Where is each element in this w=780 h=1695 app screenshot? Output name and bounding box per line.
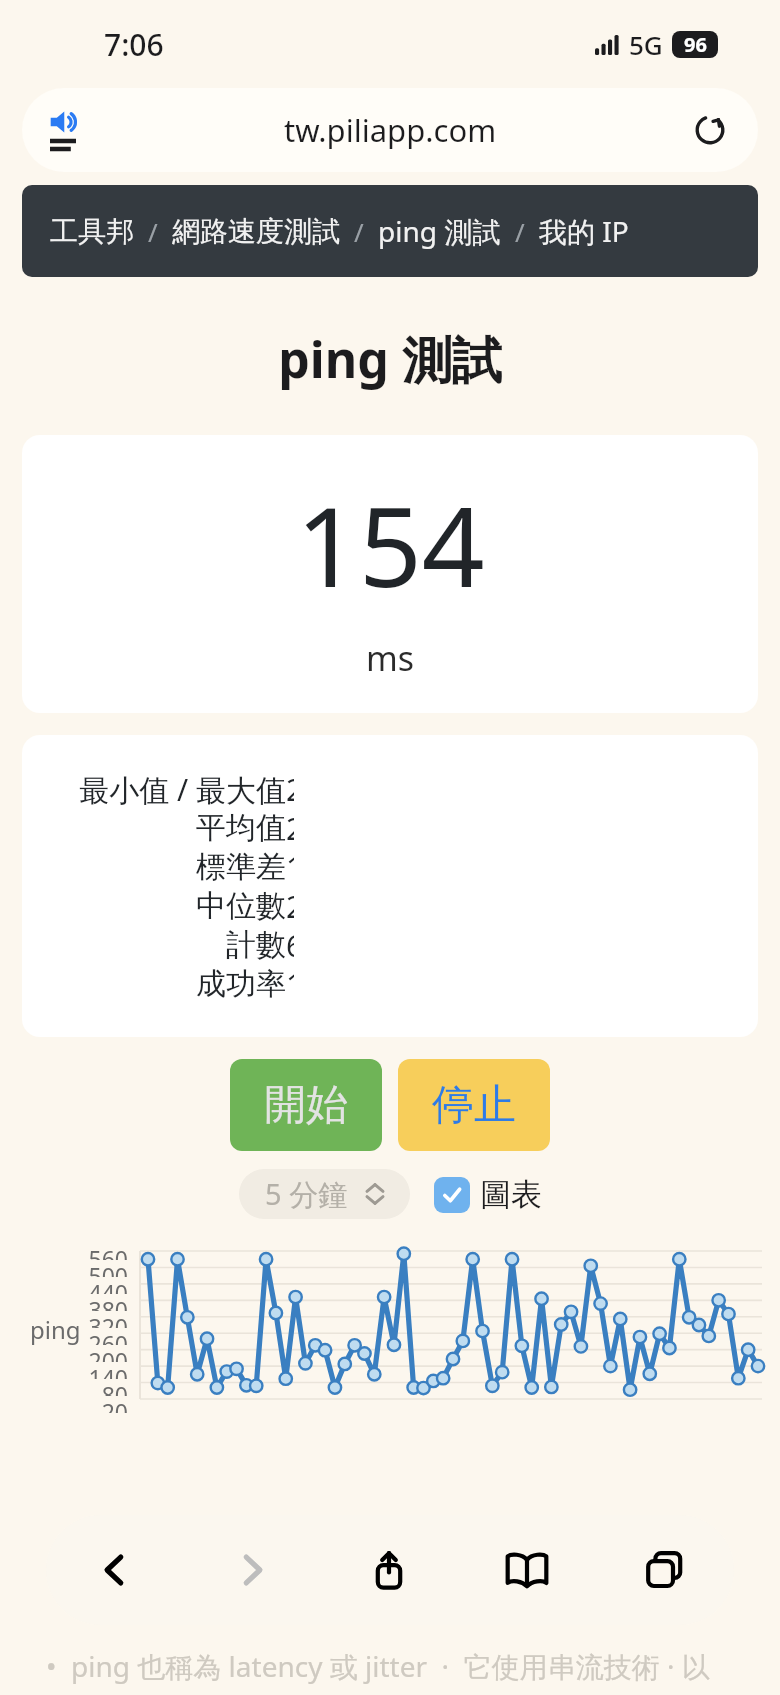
staticText: 237 — [286, 808, 294, 847]
staticText: / — [515, 214, 525, 249]
staticText: ping 測試 — [378, 212, 501, 250]
button[interactable]: 我的 IP — [539, 212, 629, 250]
staticText: 5G — [629, 27, 663, 62]
staticText: 20 — [70, 1396, 128, 1413]
button[interactable]: Tabs — [596, 1515, 734, 1625]
staticText: 成功率 — [22, 965, 286, 1003]
staticText: 100.0% — [286, 964, 294, 1003]
staticText: 中位數 — [22, 887, 286, 925]
button[interactable]: Share — [320, 1515, 458, 1625]
staticText: 平均值 — [22, 809, 286, 847]
staticText: 28 / 544 — [286, 769, 294, 808]
staticText: 圖表 — [480, 1175, 542, 1214]
staticText: 工具邦 — [50, 214, 134, 249]
staticText: 7:06 — [104, 24, 164, 65]
button[interactable]: ping 測試 — [378, 212, 501, 250]
button[interactable]: 工具邦 — [50, 214, 134, 249]
button[interactable]: Reload — [684, 104, 736, 156]
staticText: 560 — [70, 1243, 128, 1260]
staticText: 161 — [286, 847, 294, 886]
staticText: 213 — [286, 886, 294, 925]
staticText: 260 — [70, 1328, 128, 1345]
staticText: 80 — [70, 1379, 128, 1396]
staticText: 154 — [296, 469, 485, 619]
staticText: 網路速度測試 — [172, 214, 340, 249]
staticText: ping — [30, 1313, 81, 1346]
staticText: 標準差 — [22, 848, 286, 886]
staticText: 計數 — [22, 926, 286, 964]
staticText: 500 — [70, 1260, 128, 1277]
button[interactable]: 圖表 — [434, 1175, 542, 1214]
button[interactable]: 開始 — [230, 1059, 382, 1151]
button[interactable]: Mute audio — [22, 88, 758, 172]
button[interactable]: 5 分鐘 — [239, 1169, 410, 1219]
staticText: 380 — [70, 1294, 128, 1311]
button[interactable]: Forward — [183, 1515, 320, 1625]
staticText: 96 — [684, 31, 707, 58]
other: Mute audio — [50, 109, 84, 135]
staticText: 63 — [286, 925, 294, 964]
staticText: 140 — [70, 1362, 128, 1379]
staticText: ping 測試 — [0, 325, 780, 393]
button[interactable]: Back — [46, 1515, 183, 1625]
staticText: 440 — [70, 1277, 128, 1294]
staticText: 最小值 / 最大值 — [22, 769, 286, 808]
staticText: 停止 — [432, 1079, 516, 1132]
staticText: 200 — [70, 1345, 128, 1362]
staticText: 開始 — [264, 1079, 348, 1132]
staticText: tw.piliapp.com — [284, 109, 497, 151]
staticText: / — [354, 214, 364, 249]
button[interactable]: 停止 — [398, 1059, 550, 1151]
staticText: 我的 IP — [539, 212, 629, 250]
button[interactable]: 網路速度測試 — [172, 214, 340, 249]
staticText: • ping 也稱為 latency 或 jitter · 它使用串流技術 · … — [46, 1647, 710, 1685]
staticText: 5 分鐘 — [265, 1174, 348, 1214]
staticText: ms — [366, 635, 415, 681]
button[interactable]: Bookmarks — [458, 1515, 596, 1625]
staticText: / — [148, 214, 158, 249]
staticText: 320 — [70, 1311, 128, 1328]
